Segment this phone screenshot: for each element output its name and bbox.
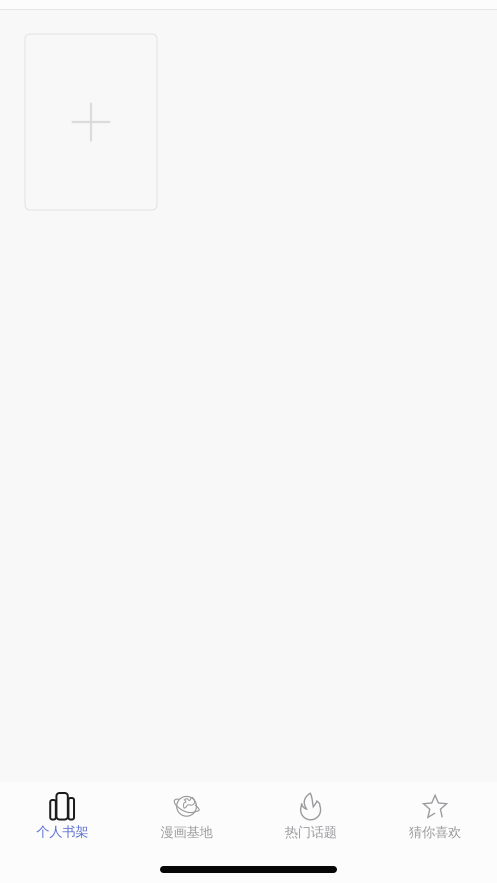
staticText: 个人书架 bbox=[36, 823, 88, 840]
button[interactable]: 热门话题 bbox=[248, 782, 373, 840]
button[interactable]: 个人书架 bbox=[0, 782, 124, 840]
staticText: 漫画基地 bbox=[160, 824, 212, 840]
button[interactable]: 漫画基地 bbox=[124, 782, 248, 840]
button[interactable]: 猜你喜欢 bbox=[373, 782, 497, 840]
staticText: 猜你喜欢 bbox=[409, 824, 461, 840]
staticText: 热门话题 bbox=[285, 824, 337, 840]
